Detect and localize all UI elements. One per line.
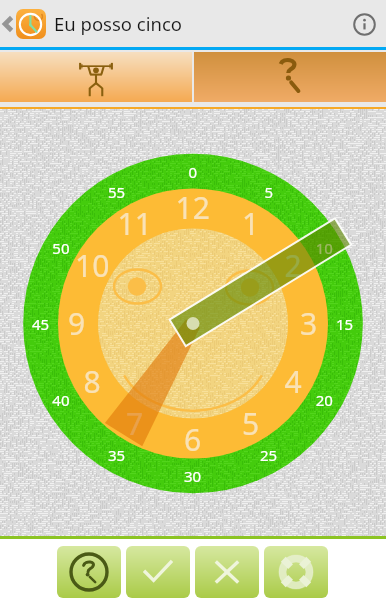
button[interactable]: Reset	[264, 546, 328, 598]
button[interactable]: Cancel	[195, 546, 259, 598]
staticText: Eu posso cinco	[54, 11, 182, 36]
button[interactable]: Quiz	[194, 52, 386, 102]
button[interactable]: Info	[342, 2, 386, 46]
button[interactable]: Confirm	[126, 546, 190, 598]
button[interactable]: Help	[57, 546, 121, 598]
button[interactable]: Back	[0, 7, 16, 41]
button[interactable]: Exercises	[0, 52, 192, 102]
